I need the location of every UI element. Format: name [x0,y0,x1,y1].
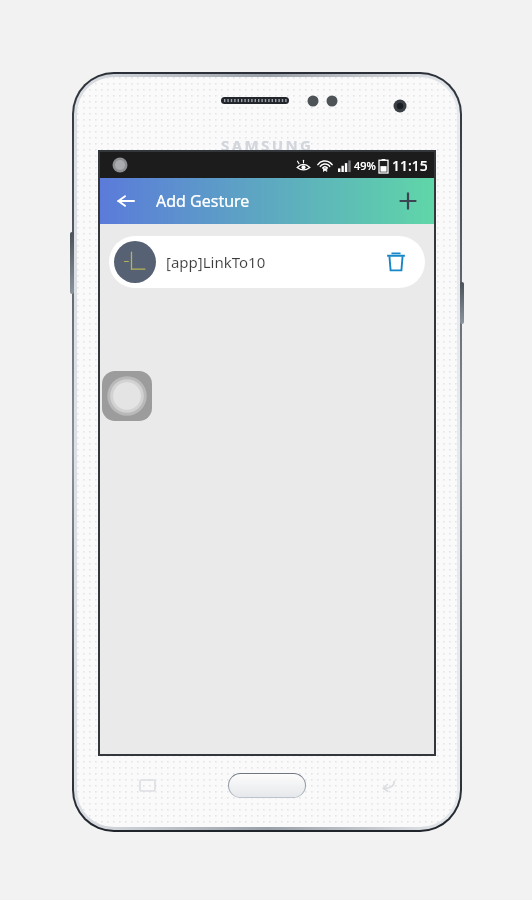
staticText: [app]LinkTo10 [166,252,376,272]
button[interactable]: Back key [375,773,399,797]
staticText: 11:15 [392,156,428,175]
button[interactable]: Add [388,181,428,221]
staticText: SAMSUNG [221,135,314,155]
button[interactable]: Delete [376,242,416,282]
staticText: Add Gesture [156,190,250,212]
button[interactable]: Assistive menu [102,371,152,421]
button[interactable]: Home [229,774,305,797]
staticText: 49% [354,158,376,173]
button[interactable]: Recent apps [135,773,159,797]
button[interactable]: [app]LinkTo10 [109,236,425,288]
button[interactable]: Back [106,181,146,221]
